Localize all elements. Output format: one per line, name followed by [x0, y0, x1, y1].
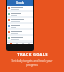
staticText: Set daily targets and track your progres… — [6, 59, 58, 67]
button[interactable] — [7, 6, 33, 12]
button[interactable]: Tab 2 — [15, 43, 19, 44]
button[interactable]: Tab 4 — [27, 43, 31, 44]
staticText: Goals — [16, 1, 24, 5]
button[interactable] — [7, 18, 33, 24]
button[interactable]: Tab 1 — [9, 43, 13, 44]
button[interactable] — [7, 30, 33, 36]
staticText: TRACK GOALS — [17, 52, 48, 57]
button[interactable]: Tab 3 — [21, 43, 25, 44]
button[interactable] — [7, 36, 33, 42]
button[interactable] — [7, 24, 33, 30]
button[interactable] — [7, 12, 33, 18]
button[interactable]: Goals — [7, 0, 33, 6]
